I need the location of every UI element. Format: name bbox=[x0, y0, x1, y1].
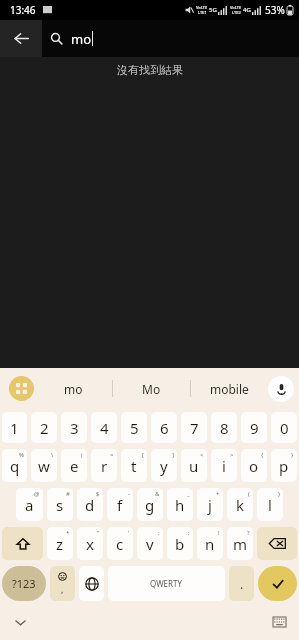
staticText: ( bbox=[248, 490, 250, 498]
staticText: [ bbox=[142, 451, 144, 459]
staticText: o bbox=[249, 456, 259, 476]
staticText: 4 bbox=[100, 418, 109, 438]
button[interactable]: s bbox=[47, 488, 73, 521]
button[interactable]: . bbox=[229, 566, 254, 601]
staticText: 7 bbox=[190, 418, 199, 438]
button[interactable]: 5 bbox=[121, 412, 147, 443]
button[interactable]: Voice input bbox=[268, 376, 294, 402]
staticText: \ bbox=[51, 451, 54, 459]
staticText: 8 bbox=[220, 418, 229, 438]
button[interactable]: 6 bbox=[151, 412, 177, 443]
button[interactable]: w bbox=[31, 449, 57, 482]
button[interactable]: Backspace bbox=[257, 527, 297, 560]
button[interactable]: a bbox=[16, 488, 43, 521]
staticText: 6 bbox=[160, 418, 169, 438]
button[interactable]: Toolbar bbox=[9, 376, 34, 401]
button[interactable]: Hide keyboard bbox=[6, 608, 34, 636]
staticText: = bbox=[110, 451, 114, 459]
button[interactable]: q bbox=[2, 449, 27, 482]
button[interactable]: m bbox=[227, 527, 253, 560]
staticText: VoLTE bbox=[230, 5, 242, 10]
staticText: ) bbox=[278, 490, 280, 498]
staticText: h bbox=[175, 495, 185, 515]
staticText: QWERTY bbox=[150, 578, 183, 589]
staticText: { bbox=[261, 451, 264, 459]
staticText: @ bbox=[34, 490, 40, 498]
button[interactable]: 3 bbox=[61, 412, 87, 443]
staticText: 5 bbox=[130, 418, 139, 438]
button[interactable]: c bbox=[107, 527, 133, 560]
staticText: - bbox=[128, 490, 130, 498]
staticText: ] bbox=[172, 451, 174, 459]
button[interactable]: Back bbox=[0, 20, 42, 57]
staticText: v bbox=[146, 534, 154, 554]
button[interactable]: 9 bbox=[241, 412, 267, 443]
button[interactable]: 1 bbox=[2, 412, 27, 443]
button[interactable]: 7 bbox=[181, 412, 207, 443]
button[interactable]: QWERTY bbox=[108, 566, 225, 601]
button[interactable]: x bbox=[77, 527, 103, 560]
button[interactable]: Mo bbox=[113, 368, 190, 409]
button[interactable]: h bbox=[167, 488, 193, 521]
button[interactable]: 2 bbox=[31, 412, 57, 443]
staticText: m bbox=[233, 534, 248, 554]
button[interactable]: u bbox=[181, 449, 207, 482]
staticText: ? bbox=[247, 529, 250, 537]
staticText: 沒有找到結果 bbox=[117, 63, 183, 77]
button[interactable]: d bbox=[77, 488, 103, 521]
staticText: i bbox=[222, 456, 226, 476]
button[interactable]: , bbox=[50, 566, 75, 601]
staticText: t bbox=[131, 456, 137, 476]
button[interactable]: 4 bbox=[91, 412, 117, 443]
button[interactable]: e bbox=[61, 449, 87, 482]
button[interactable]: mo bbox=[42, 20, 299, 57]
button[interactable]: Enter bbox=[258, 566, 297, 601]
button[interactable]: t bbox=[121, 449, 147, 482]
button[interactable]: o bbox=[241, 449, 267, 482]
button[interactable]: mobile bbox=[191, 368, 268, 409]
button[interactable]: 8 bbox=[211, 412, 237, 443]
button[interactable]: i bbox=[211, 449, 237, 482]
button[interactable]: mo bbox=[34, 368, 112, 409]
staticText: 2 bbox=[40, 418, 49, 438]
staticText: w bbox=[38, 456, 50, 476]
staticText: b bbox=[175, 534, 185, 554]
staticText: s bbox=[56, 495, 64, 515]
staticText: > bbox=[230, 451, 234, 459]
button[interactable]: y bbox=[151, 449, 177, 482]
staticText: _ bbox=[187, 490, 190, 498]
staticText: . bbox=[240, 576, 244, 592]
button[interactable]: Switch keyboard bbox=[265, 608, 293, 636]
button[interactable]: b bbox=[167, 527, 193, 560]
staticText: j bbox=[208, 495, 212, 515]
button[interactable]: f bbox=[107, 488, 133, 521]
button[interactable]: n bbox=[197, 527, 223, 560]
staticText: y bbox=[160, 456, 168, 476]
button[interactable]: g bbox=[137, 488, 163, 521]
staticText: e bbox=[70, 456, 79, 476]
staticText: VoLTE bbox=[196, 5, 208, 10]
button[interactable]: j bbox=[197, 488, 223, 521]
staticText: ' bbox=[128, 529, 130, 537]
staticText: 3 bbox=[70, 418, 79, 438]
button[interactable]: l bbox=[257, 488, 283, 521]
staticText: , bbox=[61, 583, 64, 595]
staticText: & bbox=[155, 490, 160, 498]
button[interactable]: ?123 bbox=[2, 566, 46, 601]
staticText: g bbox=[145, 495, 155, 515]
staticText: 5G bbox=[209, 6, 217, 14]
staticText: k bbox=[236, 495, 245, 515]
staticText: 1 bbox=[10, 418, 19, 438]
button[interactable]: 0 bbox=[271, 412, 297, 443]
button[interactable]: v bbox=[137, 527, 163, 560]
button[interactable]: z bbox=[47, 527, 73, 560]
staticText: n bbox=[205, 534, 215, 554]
button[interactable]: Language bbox=[79, 566, 104, 601]
button[interactable]: r bbox=[91, 449, 117, 482]
button[interactable]: Shift bbox=[2, 527, 43, 560]
button[interactable]: p bbox=[271, 449, 297, 482]
staticText: * bbox=[66, 529, 70, 537]
button[interactable]: k bbox=[227, 488, 253, 521]
staticText: Mo bbox=[142, 381, 161, 397]
staticText: 9 bbox=[250, 418, 259, 438]
